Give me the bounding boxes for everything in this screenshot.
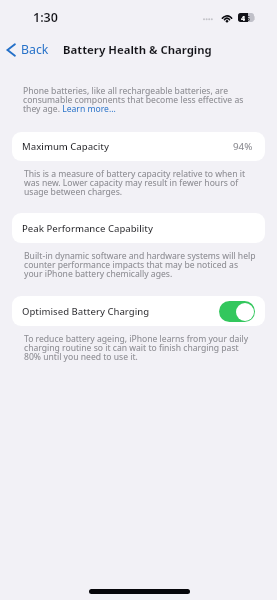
staticText: Back xyxy=(21,41,49,58)
staticText: Battery Health & Charging xyxy=(63,42,212,57)
other: Battery 46 percent xyxy=(238,12,257,23)
staticText: 94% xyxy=(233,140,253,153)
button[interactable]: Optimised Battery Charging xyxy=(219,301,255,322)
staticText: Built-in dynamic software and hardware s… xyxy=(24,250,257,280)
button[interactable]: Peak Performance Capability xyxy=(12,213,265,243)
staticText: Optimised Battery Charging xyxy=(22,305,150,318)
staticText: 1:30 xyxy=(33,9,58,26)
button[interactable]: Maximum Capacity xyxy=(12,132,265,161)
staticText: 4 xyxy=(241,13,246,23)
staticText: To reduce battery ageing, iPhone learns … xyxy=(24,333,257,363)
staticText: This is a measure of battery capacity re… xyxy=(24,168,257,198)
staticText: Peak Performance Capability xyxy=(22,222,153,235)
staticText: 6 xyxy=(246,13,251,23)
button[interactable]: Back xyxy=(6,41,49,58)
button[interactable]: Optimised Battery Charging xyxy=(12,296,265,326)
staticText: Phone batteries, like all rechargeable b… xyxy=(23,85,256,115)
staticText: Maximum Capacity xyxy=(22,140,109,153)
